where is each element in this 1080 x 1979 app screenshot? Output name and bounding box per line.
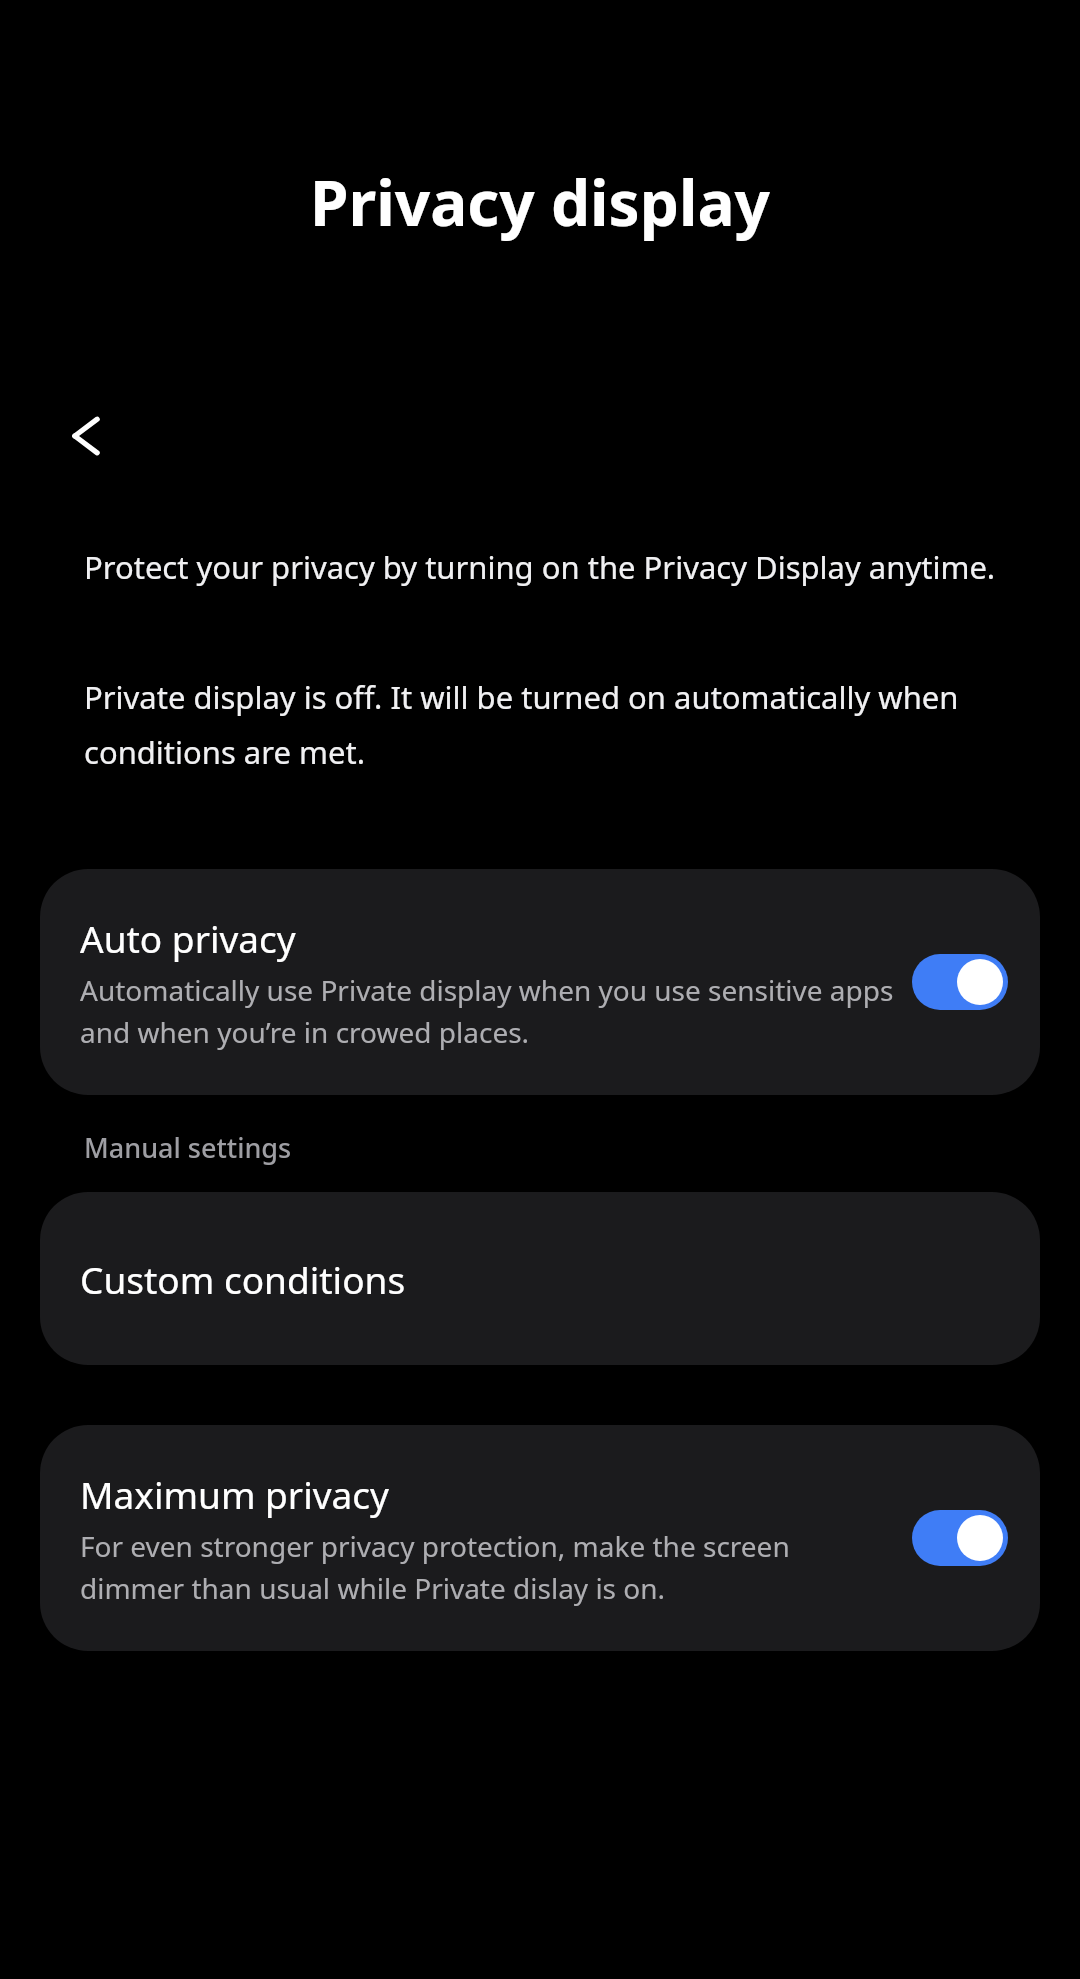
staticText: Protect your privacy by turning on the P…: [84, 546, 1014, 588]
staticText: Custom conditions: [80, 1254, 406, 1304]
staticText: Auto privacy: [80, 913, 296, 963]
staticText: Manual settings: [84, 1129, 292, 1166]
staticText: Automatically use Private display when y…: [80, 971, 894, 1051]
button[interactable]: Auto privacy: [40, 869, 1040, 1095]
staticText: Privacy display: [310, 160, 770, 244]
staticText: For even stronger privacy protection, ma…: [80, 1527, 894, 1607]
button[interactable]: Custom conditions: [40, 1192, 1040, 1365]
staticText: Private display is off. It will be turne…: [84, 676, 1024, 773]
button[interactable]: Toggle on: [912, 1510, 1008, 1566]
button[interactable]: Maximum privacy: [40, 1425, 1040, 1651]
button[interactable]: Toggle on: [912, 954, 1008, 1010]
staticText: Maximum privacy: [80, 1469, 389, 1519]
button[interactable]: Back: [46, 396, 126, 476]
